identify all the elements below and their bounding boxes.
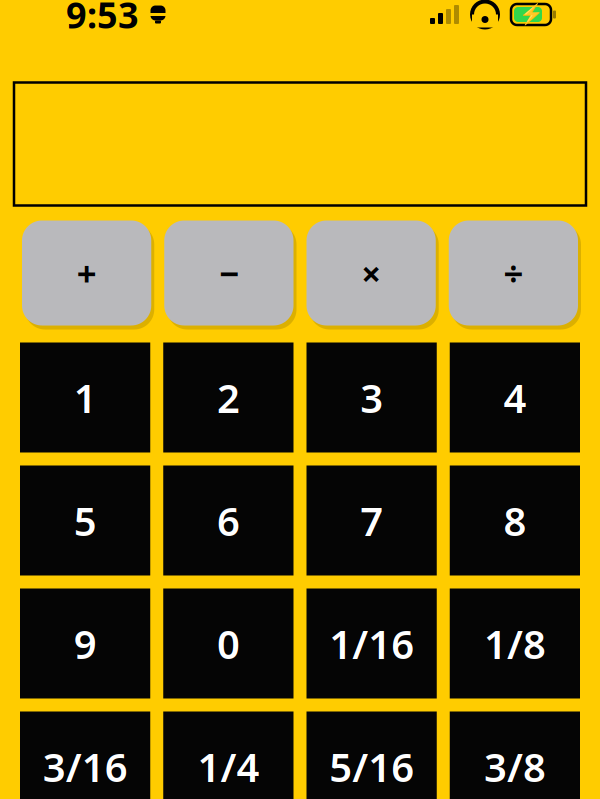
staticText: 5/16 — [329, 740, 414, 793]
staticText: × — [361, 250, 381, 296]
staticText: 7 — [360, 494, 383, 547]
staticText: 9 — [74, 617, 97, 670]
button[interactable]: 8 — [450, 465, 580, 575]
button[interactable]: 3/16 — [20, 711, 150, 799]
button[interactable]: 3 — [306, 342, 437, 452]
button[interactable]: 2 — [163, 342, 293, 452]
staticText: 6 — [217, 494, 240, 547]
staticText: 1/16 — [329, 617, 414, 670]
staticText: 3 — [360, 371, 383, 424]
button[interactable]: 5 — [20, 465, 150, 575]
button[interactable]: 1 — [20, 342, 150, 452]
button[interactable]: 7 — [306, 465, 437, 575]
staticText: 0 — [217, 617, 240, 670]
staticText: ÷ — [503, 250, 523, 296]
button[interactable]: − — [164, 220, 293, 325]
button[interactable]: 1/8 — [450, 588, 580, 698]
button[interactable]: 4 — [450, 342, 580, 452]
staticText: + — [77, 250, 97, 296]
button[interactable]: 5/16 — [306, 711, 437, 799]
button[interactable]: 9 — [20, 588, 150, 698]
staticText: 1 — [74, 371, 97, 424]
staticText: ⚡ — [518, 3, 543, 26]
staticText: − — [219, 250, 239, 296]
button[interactable]: 1/4 — [163, 711, 293, 799]
staticText: 5 — [74, 494, 97, 547]
button[interactable]: 3/8 — [450, 711, 580, 799]
staticText: 2 — [217, 371, 240, 424]
button[interactable]: 1/16 — [306, 588, 437, 698]
staticText: 3/16 — [43, 740, 128, 793]
button[interactable]: 6 — [163, 465, 293, 575]
staticText: 1/8 — [484, 617, 546, 670]
staticText: 8 — [503, 494, 526, 547]
staticText: 1/4 — [197, 740, 259, 793]
button[interactable]: + — [22, 220, 151, 325]
button[interactable]: 0 — [163, 588, 293, 698]
button[interactable]: ÷ — [449, 220, 578, 325]
button[interactable]: × — [306, 220, 436, 325]
staticText: 3/8 — [484, 740, 546, 793]
staticText: 4 — [503, 371, 526, 424]
staticText: 9:53 — [66, 0, 139, 38]
